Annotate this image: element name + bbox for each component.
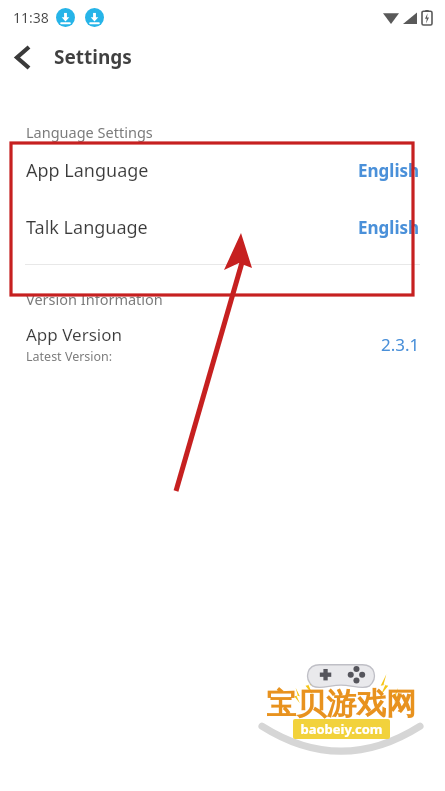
button[interactable]: Back bbox=[0, 34, 46, 80]
staticText: English bbox=[358, 216, 420, 239]
staticText: 宝贝游戏网 bbox=[266, 685, 416, 723]
staticText: App Language bbox=[26, 158, 149, 183]
staticText: App Version bbox=[26, 323, 122, 346]
staticText: Version Information bbox=[26, 289, 163, 309]
staticText: 2.3.1 bbox=[381, 333, 420, 356]
button[interactable]: App Version bbox=[0, 323, 445, 365]
staticText: 11:38 bbox=[13, 8, 49, 27]
staticText: English bbox=[358, 159, 420, 182]
staticText: Language Settings bbox=[26, 122, 153, 142]
staticText: Latest Version: bbox=[26, 348, 113, 365]
button[interactable]: Talk Language bbox=[0, 211, 445, 244]
button[interactable]: App Language bbox=[0, 154, 445, 187]
staticText: baobeiy.com bbox=[300, 720, 383, 738]
staticText: Settings bbox=[54, 44, 132, 70]
staticText: Talk Language bbox=[26, 215, 148, 240]
